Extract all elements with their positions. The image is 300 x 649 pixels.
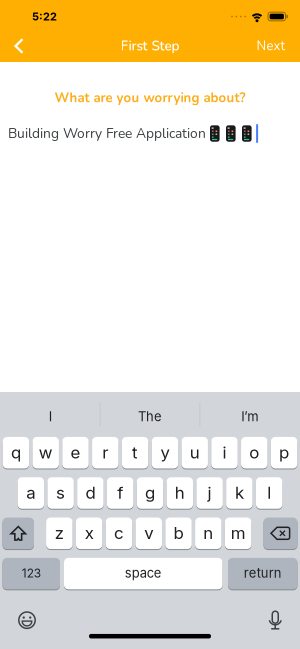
- staticText: 123: [22, 566, 41, 580]
- button[interactable]: Back: [0, 31, 22, 61]
- staticText: Building Worry Free Application: [8, 124, 210, 143]
- staticText: u: [190, 442, 200, 462]
- staticText: I: [49, 409, 52, 424]
- button[interactable]: y: [152, 437, 178, 469]
- button[interactable]: v: [135, 517, 162, 550]
- button[interactable]: l: [256, 477, 282, 510]
- staticText: a: [26, 482, 35, 503]
- button[interactable]: m: [225, 517, 251, 550]
- staticText: c: [114, 523, 124, 543]
- staticText: l: [267, 482, 271, 503]
- staticText: q: [11, 442, 21, 462]
- staticText: o: [249, 442, 259, 462]
- button[interactable]: r: [92, 437, 119, 469]
- button[interactable]: s: [47, 477, 74, 510]
- staticText: Next: [256, 37, 285, 55]
- button[interactable]: return: [228, 558, 297, 590]
- button[interactable]: h: [167, 477, 193, 510]
- button[interactable]: e: [62, 437, 89, 469]
- button[interactable]: t: [122, 437, 148, 469]
- staticText: g: [145, 482, 155, 503]
- button[interactable]: o: [241, 437, 268, 469]
- staticText: d: [85, 482, 95, 503]
- staticText: w: [39, 442, 53, 462]
- button[interactable]: d: [77, 477, 104, 510]
- button[interactable]: c: [106, 517, 132, 550]
- button[interactable]: The: [100, 392, 199, 437]
- staticText: k: [235, 482, 244, 503]
- staticText: The: [138, 409, 162, 424]
- button[interactable]: z: [46, 517, 73, 550]
- staticText: m: [231, 523, 246, 543]
- button[interactable]: j: [196, 477, 223, 510]
- staticText: i: [222, 442, 226, 462]
- staticText: p: [279, 442, 289, 462]
- staticText: t: [132, 442, 138, 462]
- button[interactable]: b: [165, 517, 192, 550]
- button[interactable]: Delete: [263, 517, 297, 550]
- staticText: y: [160, 442, 169, 462]
- button[interactable]: Dictation: [268, 611, 300, 630]
- staticText: I’m: [241, 409, 258, 424]
- staticText: s: [56, 482, 65, 503]
- button[interactable]: n: [195, 517, 222, 550]
- staticText: v: [144, 523, 153, 543]
- button[interactable]: x: [76, 517, 102, 550]
- button[interactable]: q: [3, 437, 29, 469]
- staticText: h: [175, 482, 185, 503]
- staticText: x: [85, 523, 94, 543]
- button[interactable]: Shift: [2, 517, 34, 550]
- button[interactable]: Next: [256, 31, 300, 61]
- staticText: z: [55, 523, 64, 543]
- staticText: return: [244, 565, 282, 581]
- staticText: j: [208, 482, 212, 503]
- staticText: space: [125, 565, 162, 581]
- staticText: f: [117, 482, 123, 503]
- button[interactable]: 123: [2, 558, 60, 590]
- button[interactable]: w: [32, 437, 59, 469]
- staticText: What are you worrying about?: [54, 89, 245, 107]
- button[interactable]: k: [226, 477, 253, 510]
- button[interactable]: g: [137, 477, 163, 510]
- button[interactable]: i: [211, 437, 238, 469]
- staticText: e: [70, 442, 80, 462]
- staticText: n: [203, 523, 213, 543]
- button[interactable]: I: [1, 392, 100, 437]
- button[interactable]: I’m: [200, 392, 299, 437]
- staticText: First Step: [120, 37, 179, 55]
- staticText: b: [174, 523, 184, 543]
- button[interactable]: p: [271, 437, 297, 469]
- button[interactable]: u: [181, 437, 208, 469]
- button[interactable]: Emoji: [0, 611, 36, 629]
- button[interactable]: a: [18, 477, 44, 510]
- button[interactable]: f: [107, 477, 133, 510]
- staticText: 5:22: [32, 10, 57, 23]
- button[interactable]: space: [64, 558, 222, 590]
- staticText: r: [102, 442, 108, 462]
